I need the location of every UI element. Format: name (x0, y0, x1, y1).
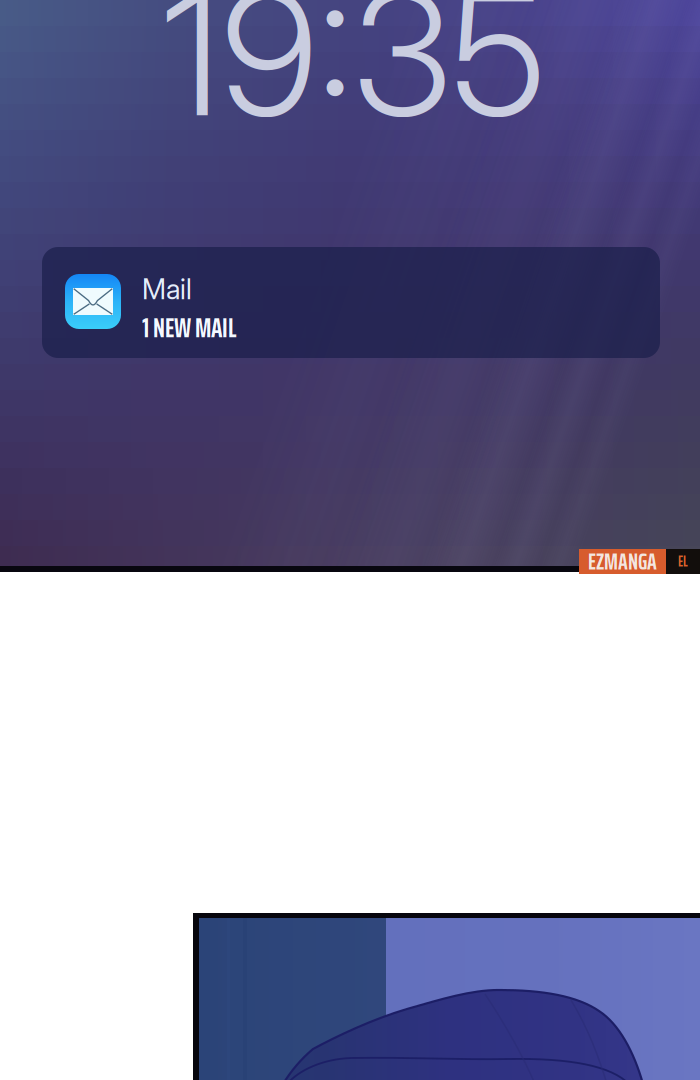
staticText: Mail (142, 272, 192, 306)
button[interactable]: Mail (42, 247, 660, 358)
staticText: 1 NEW MAIL (142, 307, 236, 349)
staticText: EZMANGA (588, 544, 657, 579)
staticText: EL (678, 550, 688, 573)
staticText: 19:35 (162, 0, 546, 156)
